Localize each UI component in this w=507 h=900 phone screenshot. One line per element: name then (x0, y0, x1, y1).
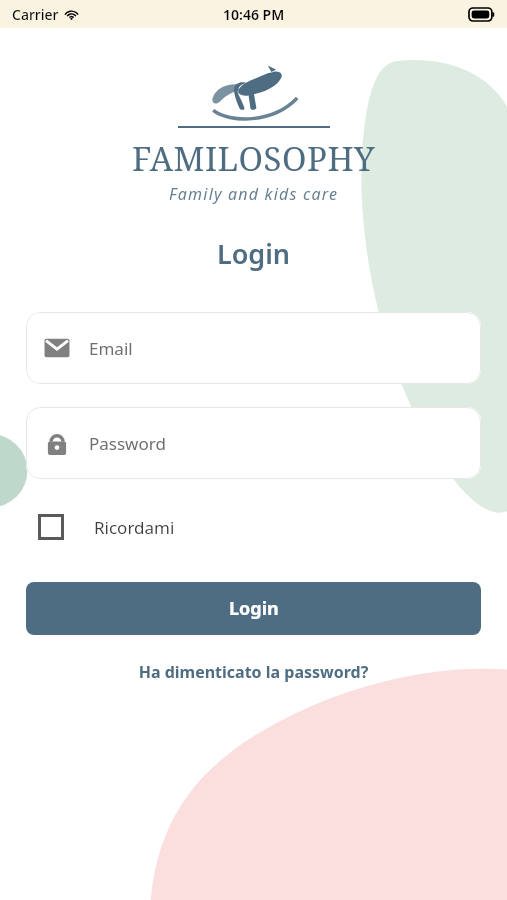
staticText: Ricordami (94, 516, 175, 539)
button[interactable]: Ha dimenticato la password? (0, 655, 507, 689)
staticText: Login (229, 596, 279, 621)
staticText: Family and kids care (169, 183, 339, 205)
button[interactable]: Password (26, 407, 481, 479)
button[interactable]: Ricordami (26, 508, 481, 546)
staticText: Password (89, 432, 166, 455)
staticText: Carrier (12, 5, 59, 24)
button[interactable]: Login (26, 582, 481, 635)
button[interactable]: Email (26, 312, 481, 384)
staticText: FAMILOSOPHY (132, 136, 376, 181)
staticText: Email (89, 337, 133, 360)
staticText: Ha dimenticato la password? (0, 661, 507, 683)
staticText: Login (0, 235, 507, 272)
staticText: 10:46 PM (223, 5, 285, 24)
